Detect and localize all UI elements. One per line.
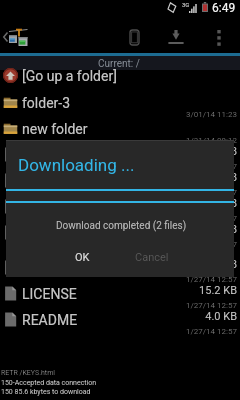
staticText: 1/27/14 12:57 [137,301,237,310]
button[interactable]: OK [54,245,110,269]
staticText: 1/27/14 12:57 [137,188,237,197]
staticText: CHANGES [22,225,87,241]
staticText: Current: / [98,58,140,70]
button[interactable]: folder-3 [0,97,240,124]
button[interactable]: NOTICE [0,201,240,228]
staticText: 150-Accepted data connection [1,379,97,387]
staticText: 1/27/14 12:57 [137,162,237,171]
button[interactable]: Cancel [124,245,180,269]
staticText: RETR /KEYS.html [1,369,55,377]
staticText: 150 85.6 kbytes to download [1,388,91,396]
staticText: 3/01/14 11:23 [137,110,237,119]
staticText: 1/27/14 12:57 [137,275,237,284]
staticText: 8.4 KB [137,223,237,236]
staticText: 3G [182,1,190,8]
button[interactable]: More options [208,20,230,56]
staticText: 85.6 KB [137,171,237,184]
staticText: 6:49 [212,1,236,15]
staticText: [Go up a folder] [22,68,117,84]
button[interactable]: README [0,314,240,341]
staticText: new folder [22,121,88,137]
staticText: 1/27/14 12:57 [137,214,237,223]
staticText: Downloading ... [18,155,135,175]
staticText: folder-3 [22,95,71,111]
button[interactable]: new folder [0,123,240,150]
staticText: NOTICE [22,199,71,215]
staticText: 15.2 KB [137,284,237,297]
staticText: OK [75,251,90,264]
staticText: 4.0 KB [137,310,237,323]
staticText: 1.2 KB [137,145,237,158]
staticText: index.html [22,147,88,163]
staticText: 1/27/14 12:57 [137,327,237,336]
staticText: Cancel [135,251,169,264]
staticText: 1/27/14 12:57 [137,240,237,249]
button[interactable]: Download [163,19,189,55]
staticText: README [22,312,78,328]
staticText: 2.1 KB [137,197,237,210]
button[interactable]: Current: / [0,56,240,70]
button[interactable]: [Go up a folder] [0,70,240,97]
button[interactable]: INSTALL [0,262,240,289]
staticText: 1/31/14 09:12 [137,136,237,145]
button[interactable]: Navigate up [0,19,34,55]
button[interactable]: Local device [121,19,147,55]
button[interactable]: index.html [0,149,240,176]
staticText: Download completed (2 files) [56,220,187,232]
staticText: LICENSE [22,286,77,302]
button[interactable]: CHANGES [0,227,240,254]
button[interactable]: KEYS.html [0,175,240,202]
button[interactable]: LICENSE [0,288,240,315]
staticText: 3.3 KB [137,258,237,271]
